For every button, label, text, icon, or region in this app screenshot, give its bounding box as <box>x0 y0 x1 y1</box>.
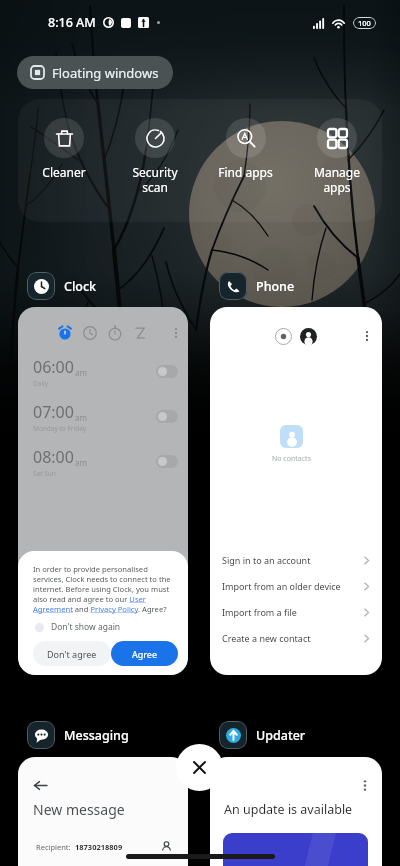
button[interactable]: Agree <box>111 641 178 666</box>
staticText: Clock <box>64 278 97 295</box>
button[interactable]: 06:00 <box>18 307 188 675</box>
staticText: Phone <box>256 278 295 295</box>
staticText: Agree <box>132 648 157 660</box>
button[interactable]: Import from an older device <box>210 573 382 599</box>
button[interactable]: Floating windows <box>17 56 173 89</box>
button[interactable]: 07:00 <box>18 394 188 439</box>
staticText: 18730218809 <box>75 842 123 852</box>
button[interactable]: Clock <box>27 272 97 300</box>
button[interactable]: Cleaner <box>18 99 109 180</box>
button[interactable] <box>156 455 178 468</box>
staticText: Sat Sun <box>33 469 56 478</box>
button[interactable]: Close recents <box>176 744 223 791</box>
button[interactable] <box>156 365 178 378</box>
button[interactable]: Don't agree <box>33 641 111 666</box>
button[interactable]: New message <box>18 757 188 866</box>
button[interactable]: No contacts <box>210 307 382 675</box>
staticText: Cleaner <box>42 164 86 180</box>
staticText: Security scan <box>132 164 178 195</box>
staticText: 8:16 AM <box>48 14 96 31</box>
button[interactable]: Phone <box>219 272 295 300</box>
staticText: 08:00 <box>33 446 74 468</box>
button[interactable]: 08:00 <box>18 439 188 484</box>
button[interactable]: Find apps <box>200 99 291 180</box>
button[interactable]: 06:00 <box>18 349 188 394</box>
staticText: Monday to Friday <box>33 424 87 433</box>
staticText: Don't show again <box>51 621 121 633</box>
staticText: Messaging <box>64 727 129 744</box>
staticText: Import from a file <box>222 606 297 618</box>
staticText: 06:00 <box>33 356 74 378</box>
staticText: 07:00 <box>33 401 74 423</box>
staticText: No contacts <box>272 454 311 464</box>
staticText: am <box>75 367 87 378</box>
staticText: In order to provide personalised service… <box>33 564 178 614</box>
staticText: Find apps <box>218 164 273 180</box>
staticText: Create a new contact <box>222 632 311 644</box>
staticText: am <box>75 457 87 468</box>
button[interactable] <box>156 410 178 423</box>
button[interactable]: Messaging <box>27 721 129 749</box>
staticText: New message <box>33 800 125 819</box>
button[interactable]: Security scan <box>109 99 200 195</box>
staticText: An update is available <box>224 801 353 818</box>
staticText: Import from an older device <box>222 580 341 592</box>
staticText: 100 <box>358 18 371 28</box>
staticText: Floating windows <box>52 64 159 82</box>
staticText: am <box>75 412 87 423</box>
button[interactable]: Manage apps <box>291 99 382 195</box>
staticText: Updater <box>256 727 306 744</box>
staticText: Sign in to an account <box>222 554 311 566</box>
staticText: Daily <box>33 379 49 388</box>
button[interactable]: Import from a file <box>210 599 382 625</box>
staticText: Recipient: <box>36 842 71 852</box>
button[interactable]: Create a new contact <box>210 625 382 651</box>
button[interactable]: Don't show again <box>33 621 121 633</box>
button[interactable]: An update is available <box>210 757 382 866</box>
staticText: Manage apps <box>314 164 360 195</box>
button[interactable]: Sign in to an account <box>210 547 382 573</box>
staticText: Don't agree <box>47 648 97 660</box>
button[interactable]: Updater <box>219 721 306 749</box>
